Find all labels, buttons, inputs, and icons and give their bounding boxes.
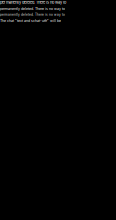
staticText: permanently deleted. There is no way to <box>0 13 65 17</box>
staticText: The chat “text and schat-utfr” will be <box>0 19 61 23</box>
staticText: permanently deleted. There is no way to <box>0 0 66 5</box>
staticText: permanently deleted. There is no way to <box>0 7 65 11</box>
